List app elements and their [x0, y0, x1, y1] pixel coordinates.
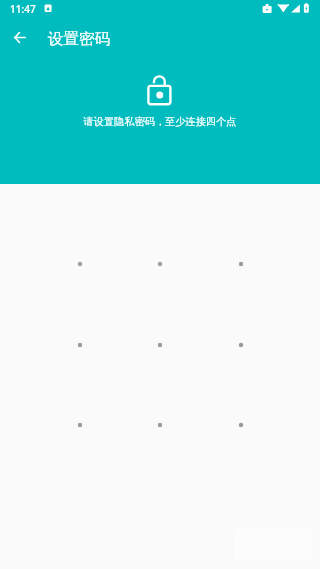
button[interactable]: Pattern dot 4 [42, 307, 118, 383]
staticText: 请设置隐私密码，至少连接四个点 [0, 115, 320, 128]
button[interactable]: Pattern dot 9 [203, 387, 279, 463]
button[interactable]: Pattern dot 3 [203, 226, 279, 302]
button[interactable]: Pattern dot 7 [42, 387, 118, 463]
button[interactable]: Pattern dot 2 [122, 226, 198, 302]
button[interactable]: Pattern dot 6 [203, 307, 279, 383]
button[interactable]: Pattern dot 8 [122, 387, 198, 463]
staticText: 11:47 [10, 2, 36, 16]
other: Unlock [144, 72, 176, 110]
staticText: 设置密码 [48, 29, 110, 49]
button[interactable]: Back [0, 17, 40, 57]
button[interactable]: Pattern dot 1 [42, 226, 118, 302]
button[interactable]: Pattern dot 5 [122, 307, 198, 383]
